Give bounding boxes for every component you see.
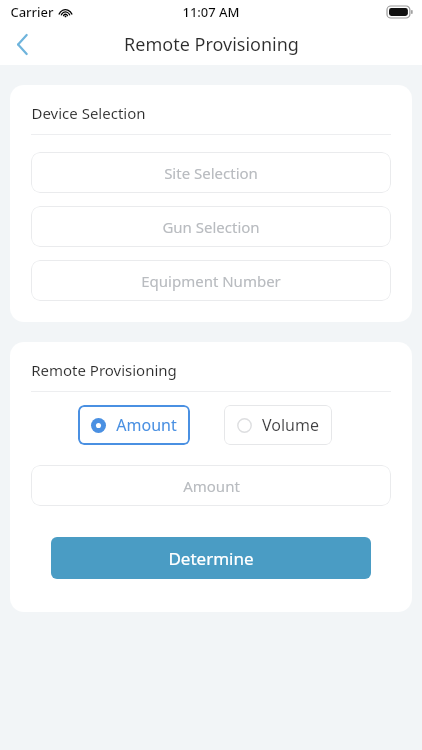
staticText: Equipment Number xyxy=(141,271,281,291)
staticText: Determine xyxy=(168,547,254,570)
button[interactable]: Amount xyxy=(31,465,391,506)
staticText: Amount xyxy=(116,414,177,436)
staticText: 11:07 AM xyxy=(182,3,240,21)
button[interactable]: Back xyxy=(0,24,44,65)
staticText: Volume xyxy=(262,414,319,436)
staticText: Amount xyxy=(183,476,240,496)
staticText: Site Selection xyxy=(164,163,258,183)
button[interactable]: Gun Selection xyxy=(31,206,391,247)
staticText: Device Selection xyxy=(31,103,146,123)
staticText: Remote Provisioning xyxy=(124,32,299,57)
button[interactable]: Amount xyxy=(78,405,190,445)
button[interactable]: Site Selection xyxy=(31,152,391,193)
staticText: Carrier xyxy=(10,3,54,21)
button[interactable]: Determine xyxy=(51,537,371,579)
button[interactable]: Equipment Number xyxy=(31,260,391,301)
staticText: Gun Selection xyxy=(162,217,260,237)
staticText: Remote Provisioning xyxy=(31,360,177,380)
button[interactable]: Volume xyxy=(224,405,332,445)
